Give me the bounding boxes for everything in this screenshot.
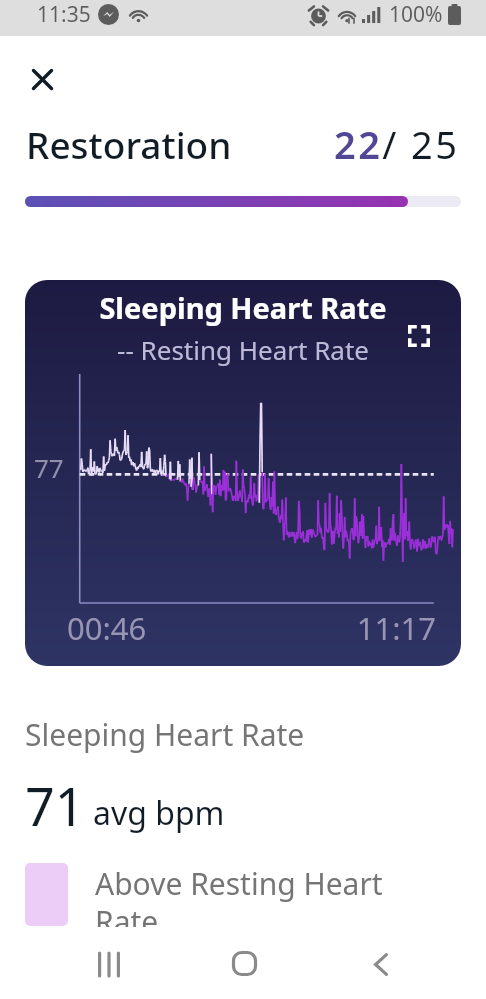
button[interactable]: Close	[32, 69, 53, 90]
button[interactable]: Back	[340, 927, 421, 999]
staticText: 00:46	[67, 607, 147, 649]
staticText: 71	[25, 770, 85, 841]
staticText: 11:35	[37, 0, 91, 29]
staticText: 100%	[389, 0, 443, 29]
button[interactable]: Recents	[68, 927, 149, 999]
button[interactable]: Sleeping Heart Rate	[25, 280, 461, 666]
button[interactable]: Home	[204, 927, 285, 999]
staticText: Sleeping Heart Rate	[25, 714, 305, 755]
staticText: Above Resting Heart Rate	[95, 863, 390, 942]
staticText: 22/ 25	[334, 118, 460, 170]
staticText: Sleeping Heart Rate	[25, 288, 461, 327]
button[interactable]: Expand chart	[408, 325, 430, 347]
staticText: -- Resting Heart Rate	[25, 332, 461, 367]
staticText: 11:17	[298, 607, 436, 649]
staticText: avg bpm	[93, 791, 225, 835]
staticText: 77	[34, 450, 64, 485]
staticText: Restoration	[26, 119, 232, 169]
